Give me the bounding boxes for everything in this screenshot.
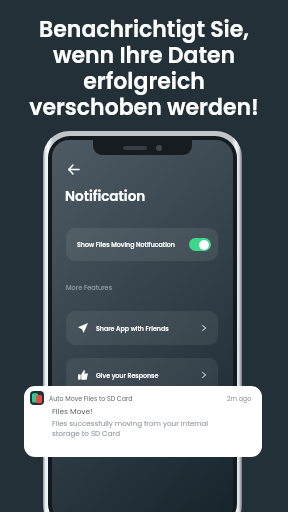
button[interactable]: Back	[64, 160, 82, 178]
staticText: Give your Response	[96, 371, 159, 380]
button[interactable]: Share App with Friends	[66, 311, 218, 345]
staticText: Auto Move Files to SD Card	[49, 394, 133, 403]
button[interactable]: Show Files Moving Notifucation	[66, 228, 218, 261]
button[interactable]: Auto Move Files to SD Card	[24, 386, 262, 457]
staticText: Rate Us	[96, 418, 120, 427]
staticText: Share App with Friends	[96, 324, 169, 333]
staticText: Files Move!	[52, 406, 93, 416]
staticText: More Features	[66, 283, 113, 292]
staticText: Benachrichtigt Sie, wenn Ihre Daten erfo…	[0, 14, 288, 123]
staticText: Notification	[65, 187, 146, 206]
staticText: Files successfully moving from your inte…	[52, 418, 209, 438]
button[interactable]: Rate Us	[66, 405, 218, 439]
staticText: Show Files Moving Notifucation	[77, 240, 175, 249]
button[interactable]: Give your Response	[66, 358, 218, 392]
staticText: 2m ago	[227, 394, 252, 403]
